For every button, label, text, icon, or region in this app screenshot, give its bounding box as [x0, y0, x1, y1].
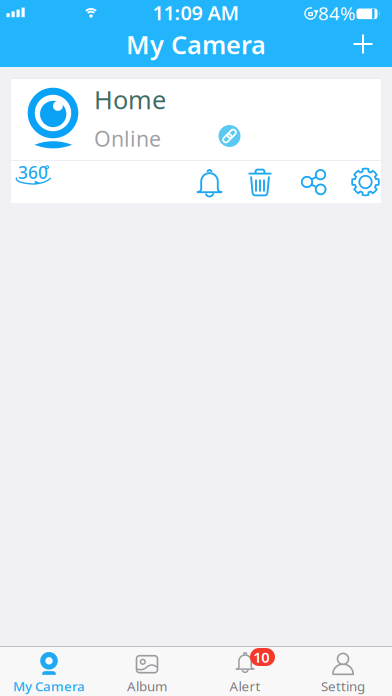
button[interactable]: Album	[98, 646, 196, 696]
staticText: Home	[94, 83, 166, 116]
staticText: 360	[18, 161, 48, 184]
button[interactable]: Settings	[349, 166, 381, 198]
staticText: Alert	[229, 677, 260, 695]
staticText: 10	[253, 647, 269, 667]
staticText: My Camera	[13, 677, 85, 695]
staticText: Online	[94, 124, 161, 153]
button[interactable]: Add Camera	[349, 30, 377, 58]
staticText: 11:09 AM	[152, 0, 239, 26]
button[interactable]: Pan 360	[12, 163, 56, 189]
button[interactable]: Alerts	[194, 167, 224, 197]
staticText: Album	[127, 677, 167, 695]
staticText: Setting	[321, 677, 365, 695]
button[interactable]: Share	[301, 167, 331, 197]
button[interactable]: Home	[11, 78, 381, 160]
button[interactable]: My Camera	[0, 646, 98, 696]
button[interactable]: Delete	[247, 167, 273, 197]
button[interactable]: Connection	[218, 125, 240, 147]
staticText: 84%	[318, 1, 356, 25]
button[interactable]: Setting	[294, 646, 392, 696]
button[interactable]: 10	[196, 646, 294, 696]
staticText: My Camera	[126, 28, 266, 61]
